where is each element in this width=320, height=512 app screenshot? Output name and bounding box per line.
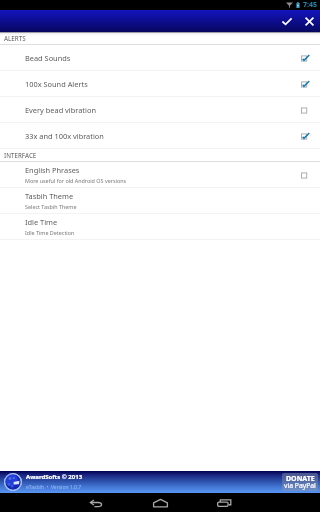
button[interactable]: Every bead vibration — [0, 97, 320, 123]
staticText: 100x Sound Alerts — [25, 79, 301, 89]
button[interactable]: 33x and 100x vibration — [0, 123, 320, 149]
button[interactable]: Bead Sounds — [0, 45, 320, 71]
button[interactable]: Recent apps — [192, 493, 256, 512]
staticText: via PayPal — [284, 481, 316, 490]
staticText: ALERTS — [4, 34, 26, 42]
staticText: Idle Time — [25, 217, 58, 227]
button[interactable]: Tasbih Theme — [0, 188, 320, 214]
staticText: Every bead vibration — [25, 105, 301, 115]
button[interactable]: Back — [64, 493, 128, 512]
staticText: Idle Time Detection — [25, 229, 75, 236]
button[interactable]: Home — [128, 493, 192, 512]
staticText: eTasbih • Version 1.0.7 — [26, 484, 82, 491]
button[interactable]: Accept — [276, 10, 298, 32]
button[interactable]: English Phrases — [0, 162, 320, 188]
staticText: More useful for old Android OS versions — [25, 177, 127, 184]
staticText: INTERFACE — [4, 151, 37, 159]
staticText: DONATE — [286, 474, 315, 484]
staticText: 7:45 — [303, 0, 317, 10]
staticText: Select Tasbih Theme — [25, 203, 77, 210]
staticText: Bead Sounds — [25, 53, 301, 63]
staticText: Tasbih Theme — [25, 191, 74, 201]
staticText: English Phrases — [25, 165, 80, 175]
staticText: AwardSofts © 2013 — [26, 473, 83, 481]
button[interactable]: Idle Time — [0, 214, 320, 240]
button[interactable]: Cancel — [298, 10, 320, 32]
button[interactable]: 100x Sound Alerts — [0, 71, 320, 97]
button[interactable]: DONATE — [282, 473, 318, 491]
staticText: 33x and 100x vibration — [25, 131, 301, 141]
